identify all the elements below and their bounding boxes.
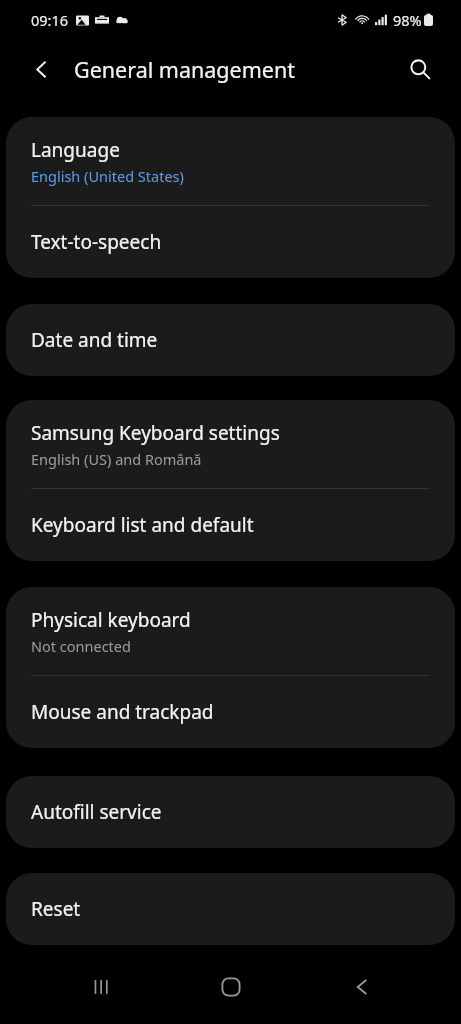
staticText: English (US) and Română [31, 449, 202, 469]
button[interactable]: Reset [6, 873, 455, 945]
staticText: Autofill service [31, 799, 162, 825]
staticText: Reset [31, 896, 81, 922]
button[interactable]: Navigate up [20, 48, 62, 90]
button[interactable]: Recent apps [69, 956, 131, 1018]
button[interactable]: Language [6, 117, 455, 205]
button[interactable]: Autofill service [6, 776, 455, 848]
button[interactable]: Home [200, 956, 262, 1018]
button[interactable]: Physical keyboard [6, 587, 455, 675]
button[interactable]: Text-to-speech [6, 206, 455, 278]
staticText: 98% [393, 10, 422, 30]
staticText: Not connected [31, 636, 131, 656]
button[interactable]: Samsung Keyboard settings [6, 400, 455, 488]
button[interactable]: Keyboard list and default [6, 489, 455, 561]
staticText: English (United States) [31, 166, 184, 186]
staticText: Text-to-speech [31, 229, 162, 255]
button[interactable]: Search [398, 47, 442, 91]
staticText: Physical keyboard [31, 607, 191, 633]
button[interactable]: Back [330, 956, 392, 1018]
button[interactable]: Mouse and trackpad [6, 676, 455, 748]
staticText: 09:16 [31, 10, 69, 30]
staticText: Mouse and trackpad [31, 699, 214, 725]
staticText: Date and time [31, 327, 158, 353]
staticText: Samsung Keyboard settings [31, 420, 280, 446]
button[interactable]: Date and time [6, 304, 455, 376]
staticText: Language [31, 137, 120, 163]
staticText: General management [74, 55, 295, 84]
staticText: Keyboard list and default [31, 512, 254, 538]
